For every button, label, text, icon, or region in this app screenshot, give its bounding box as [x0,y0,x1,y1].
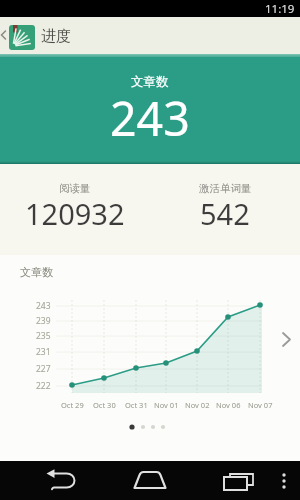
staticText: 文章数 [20,265,53,279]
button[interactable] [41,461,81,500]
staticText: Nov 07 [248,400,273,410]
staticText: 文章数 [131,74,169,90]
button[interactable]: 阅读量 [0,164,150,255]
staticText: 239 [36,315,51,327]
staticText: 阅读量 [59,182,91,195]
staticText: Oct 30 [93,400,116,410]
button[interactable] [218,461,258,500]
button[interactable] [130,461,170,500]
staticText: Oct 29 [61,400,84,410]
staticText: Nov 01 [154,400,179,410]
button[interactable]: 文章数 [0,54,300,164]
staticText: Nov 02 [185,400,210,410]
staticText: 激活单词量 [199,182,252,195]
staticText: 235 [36,330,51,342]
staticText: 227 [36,363,51,375]
staticText: 进度 [41,27,71,46]
staticText: Oct 31 [125,400,148,410]
staticText: 222 [36,380,51,392]
button[interactable]: 激活单词量 [150,164,300,255]
staticText: 231 [36,346,51,358]
staticText: 243 [36,300,51,312]
staticText: Nov 06 [216,400,241,410]
staticText: 243 [110,86,190,149]
staticText: 542 [200,194,250,233]
staticText: 120932 [25,194,125,233]
button[interactable]: 进度 [0,17,300,54]
staticText: 11:19 [265,1,295,17]
